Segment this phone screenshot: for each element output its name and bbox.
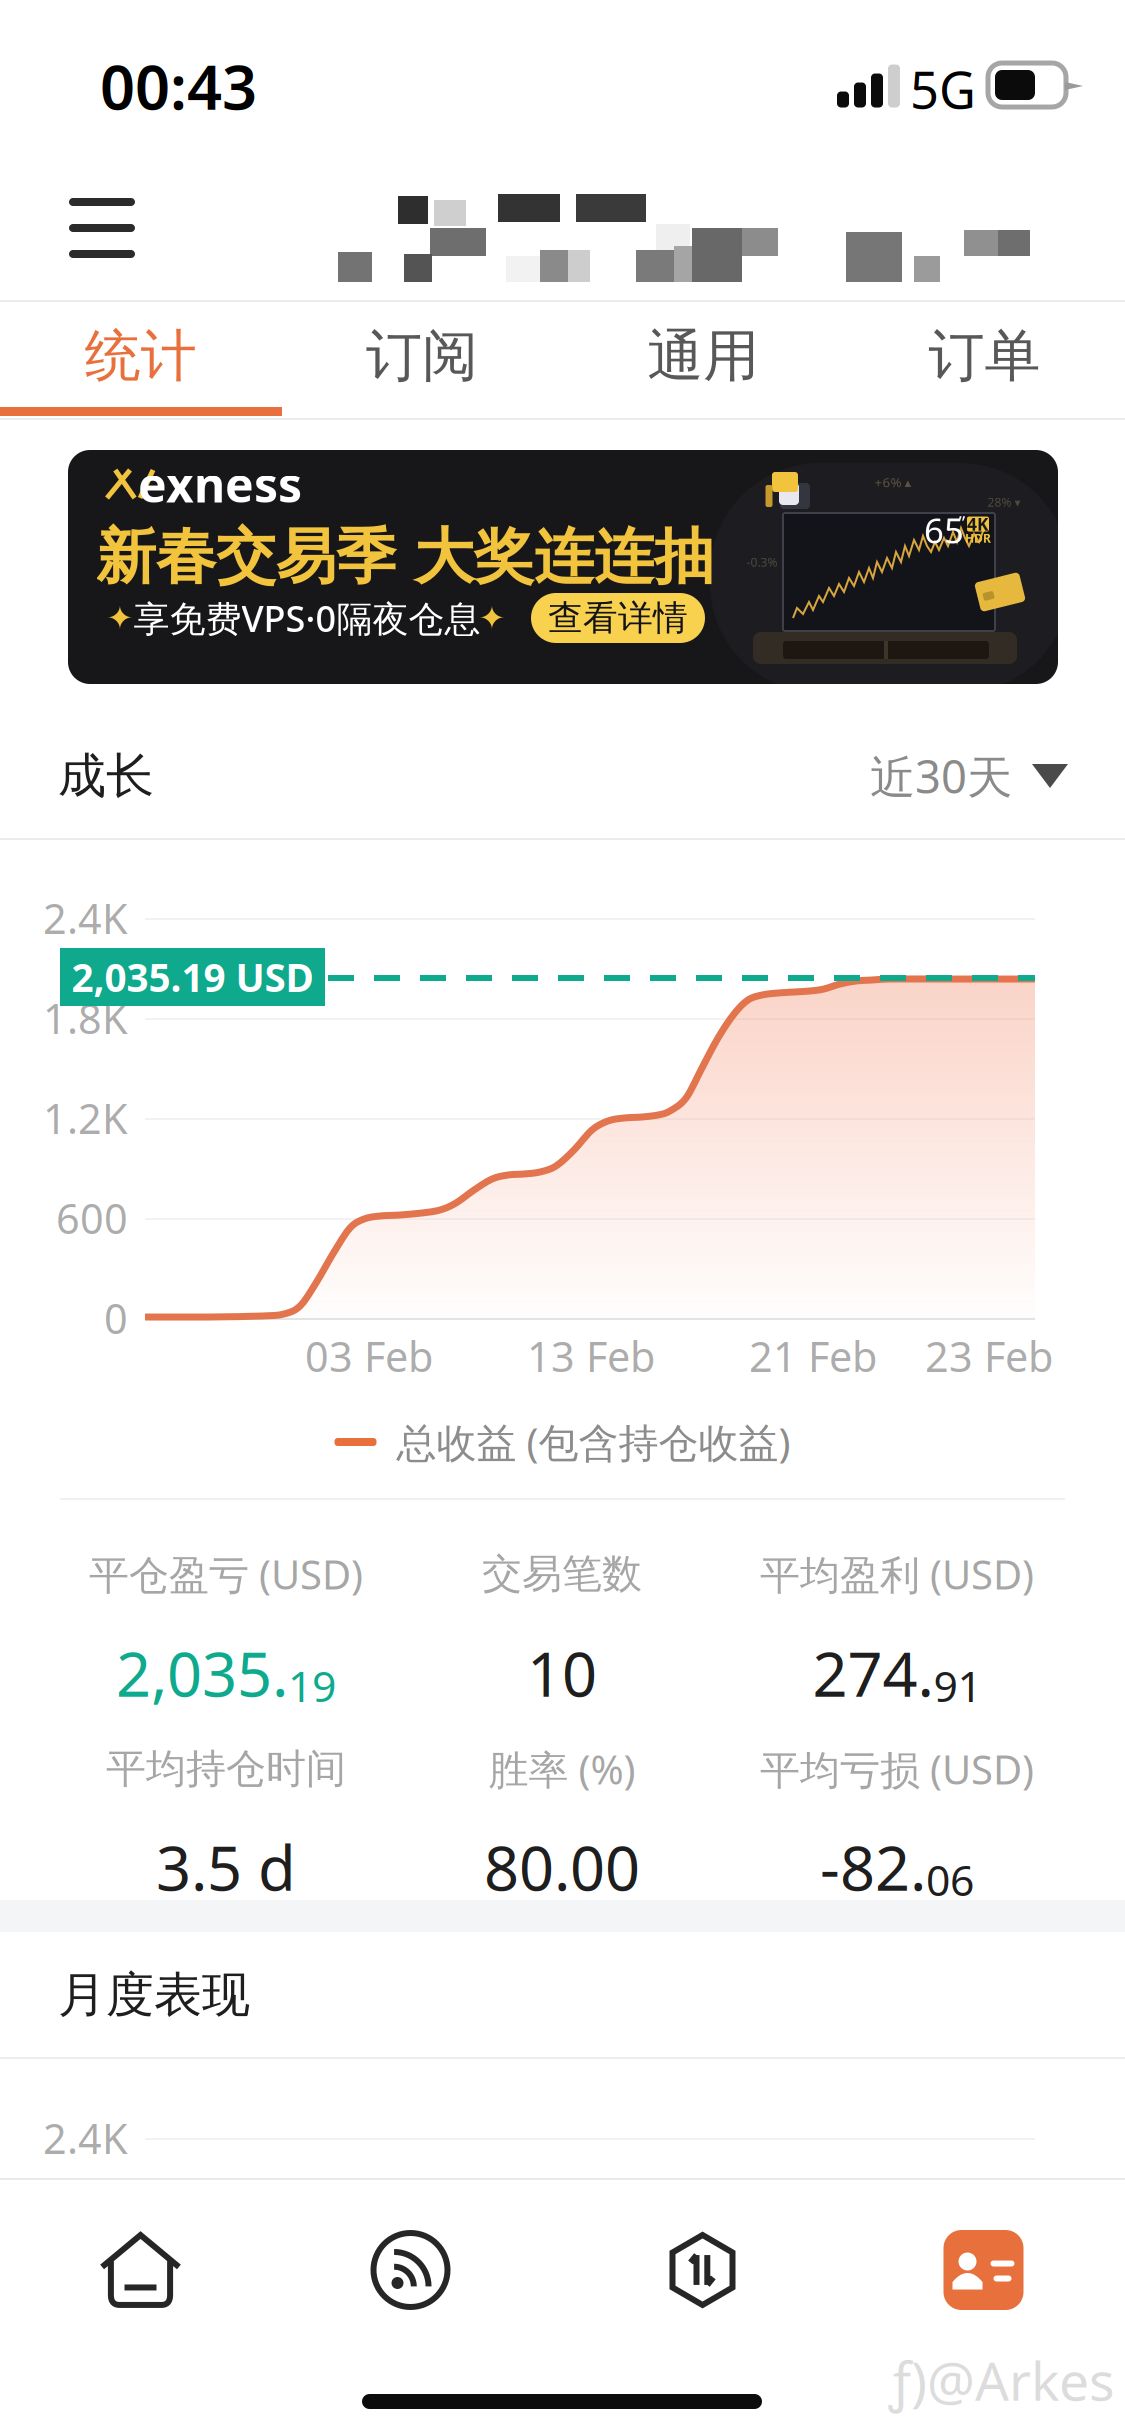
button[interactable]: 统计: [0, 302, 281, 410]
staticText: 交易笔数: [482, 1549, 642, 1598]
button[interactable]: 近30天: [870, 746, 1068, 806]
staticText: 总收益 (包含持仓收益): [396, 1415, 790, 1468]
staticText: 80.00: [484, 1826, 640, 1908]
staticText: 19: [288, 1657, 336, 1714]
staticText: 近30天: [870, 746, 1012, 806]
staticText: 平仓盈亏 (USD): [89, 1547, 363, 1600]
staticText: 3.5 d: [156, 1826, 296, 1908]
staticText: 统计: [85, 322, 197, 390]
staticText: 2,035.: [116, 1632, 288, 1714]
staticText: 2,035.19 USD: [71, 951, 313, 1003]
button[interactable]: Account: [843, 2190, 1124, 2350]
staticText: 03 Feb: [305, 1329, 433, 1383]
staticText: 月度表现: [58, 1965, 250, 2024]
staticText: 28% ▾: [987, 494, 1020, 510]
staticText: 65: [924, 507, 964, 553]
staticText: 91: [933, 1657, 981, 1714]
button[interactable]: 订阅: [281, 302, 562, 410]
staticText: -82.: [820, 1826, 926, 1908]
button[interactable]: 订单: [844, 302, 1125, 410]
staticText: 胜率 (%): [488, 1742, 635, 1795]
button[interactable]: 通用: [562, 302, 844, 410]
staticText: 订单: [928, 322, 1040, 390]
staticText: 享免费VPS·0隔夜仓息: [133, 594, 480, 642]
staticText: 平均盈利 (USD): [760, 1547, 1034, 1600]
staticText: ✦: [478, 600, 505, 636]
staticText: 1.2K: [43, 1091, 128, 1145]
staticText: HDR: [965, 530, 991, 546]
staticText: 06: [926, 1851, 974, 1908]
staticText: 平均亏损 (USD): [760, 1742, 1034, 1795]
staticText: 21 Feb: [749, 1329, 877, 1383]
staticText: exness: [138, 452, 302, 516]
staticText: 通用: [647, 322, 759, 390]
staticText: 600: [56, 1191, 128, 1245]
staticText: 平均持仓时间: [106, 1744, 346, 1793]
staticText: 5G: [910, 55, 976, 123]
staticText: 成长: [58, 746, 154, 805]
staticText: 2.4K: [43, 2111, 128, 2165]
staticText: 2.4K: [43, 891, 128, 945]
staticText: 1.8K: [43, 991, 128, 1045]
staticText: ƒ)@Arkes: [889, 2345, 1115, 2415]
button[interactable]: Home: [0, 2190, 281, 2350]
staticText: -0.3%: [746, 554, 777, 570]
staticText: 0: [104, 1291, 128, 1345]
button[interactable]: 65: [68, 450, 1058, 684]
staticText: ✦: [106, 600, 133, 636]
button[interactable]: Trade: [562, 2190, 843, 2350]
staticText: 274.: [812, 1632, 933, 1714]
staticText: 23 Feb: [925, 1329, 1053, 1383]
staticText: 00:43: [100, 45, 257, 127]
staticText: ”: [958, 510, 965, 534]
button[interactable]: Menu: [46, 172, 158, 284]
staticText: 订阅: [366, 322, 478, 390]
button[interactable]: Signals: [270, 2190, 551, 2350]
staticText: 查看详情: [548, 597, 688, 639]
staticText: 4K: [967, 512, 989, 535]
staticText: 13 Feb: [527, 1329, 655, 1383]
staticText: 新春交易季 大奖连连抽: [96, 520, 714, 594]
staticText: 10: [527, 1632, 597, 1714]
staticText: +6% ▴: [874, 473, 911, 491]
